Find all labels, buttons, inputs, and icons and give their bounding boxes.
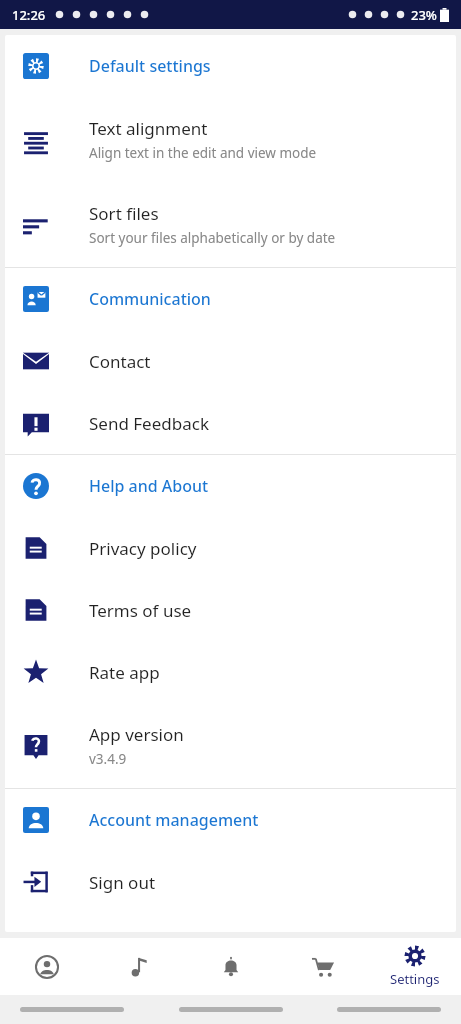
button[interactable]: Sort files (5, 182, 456, 267)
staticText: Sort your files alphabetically or by dat… (89, 229, 336, 247)
staticText: Sort files (89, 202, 159, 225)
staticText: 12:26 (12, 6, 46, 24)
staticText: Default settings (89, 55, 211, 77)
button[interactable]: Help and About (5, 455, 456, 517)
button[interactable]: Contact (5, 330, 456, 392)
staticText: Account management (89, 809, 259, 831)
button[interactable]: Privacy policy (5, 517, 456, 579)
staticText: Align text in the edit and view mode (89, 144, 317, 162)
button[interactable]: Terms of use (5, 579, 456, 641)
staticText: v3.4.9 (89, 750, 127, 768)
staticText: Settings (390, 970, 440, 988)
staticText: Contact (89, 350, 151, 373)
staticText: 23% (411, 6, 437, 24)
button[interactable]: Communication (5, 268, 456, 330)
button[interactable]: Cart (277, 938, 369, 995)
button[interactable]: Default settings (5, 35, 456, 97)
button[interactable]: Send Feedback (5, 392, 456, 454)
staticText: Rate app (89, 661, 160, 684)
staticText: Help and About (89, 475, 209, 497)
button[interactable]: Profile (0, 938, 93, 995)
staticText: App version (89, 723, 184, 746)
staticText: Communication (89, 288, 211, 310)
button[interactable]: Music (93, 938, 185, 995)
button[interactable]: Notifications (185, 938, 277, 995)
staticText: Send Feedback (89, 412, 209, 435)
staticText: Privacy policy (89, 537, 197, 560)
button[interactable]: Sign out (5, 851, 456, 913)
button[interactable]: Text alignment (5, 97, 456, 182)
button[interactable]: Account management (5, 789, 456, 851)
staticText: Text alignment (89, 117, 208, 140)
button[interactable]: Settings (369, 938, 461, 995)
staticText: Sign out (89, 871, 156, 894)
button[interactable]: App version (5, 703, 456, 788)
staticText: Terms of use (89, 599, 192, 622)
button[interactable]: Rate app (5, 641, 456, 703)
